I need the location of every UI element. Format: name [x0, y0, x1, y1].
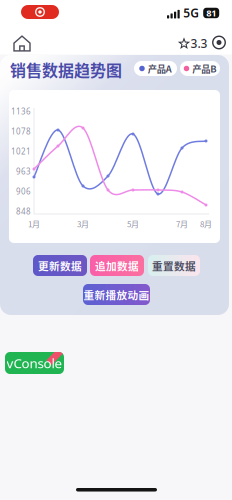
staticText: 更新数据 — [38, 258, 82, 273]
staticText: vConsole — [6, 354, 62, 372]
staticText: 产品A — [148, 62, 172, 75]
staticText: 906 — [16, 186, 31, 197]
staticText: 81 — [206, 7, 216, 19]
staticText: 1021 — [11, 146, 31, 157]
staticText: 1月 — [28, 218, 40, 230]
staticText: 销售数据趋势图 — [10, 58, 122, 81]
staticText: 3月 — [77, 218, 89, 230]
button[interactable]: vConsole — [5, 352, 64, 374]
staticText: 3.3 — [190, 35, 207, 51]
button[interactable]: 更新数据 — [33, 255, 87, 276]
staticText: 7月 — [176, 218, 188, 230]
button[interactable]: Rating 3.3 — [176, 31, 210, 55]
staticText: 重置数据 — [152, 258, 196, 273]
staticText: 963 — [16, 166, 31, 177]
button[interactable]: 重新播放动画 — [83, 284, 150, 305]
button[interactable]: Home — [8, 29, 36, 57]
button[interactable]: More options — [207, 30, 231, 54]
staticText: 追加数据 — [95, 258, 139, 273]
button[interactable]: 追加数据 — [90, 255, 144, 276]
staticText: 产品B — [192, 62, 216, 75]
staticText: 重新播放动画 — [83, 287, 149, 302]
staticText: 5月 — [127, 218, 139, 230]
staticText: 8月 — [200, 218, 212, 230]
staticText: 5G — [183, 5, 199, 21]
staticText: 1078 — [11, 126, 31, 137]
button[interactable]: 重置数据 — [148, 255, 200, 276]
staticText: 848 — [16, 206, 31, 217]
staticText: 1136 — [11, 106, 31, 117]
